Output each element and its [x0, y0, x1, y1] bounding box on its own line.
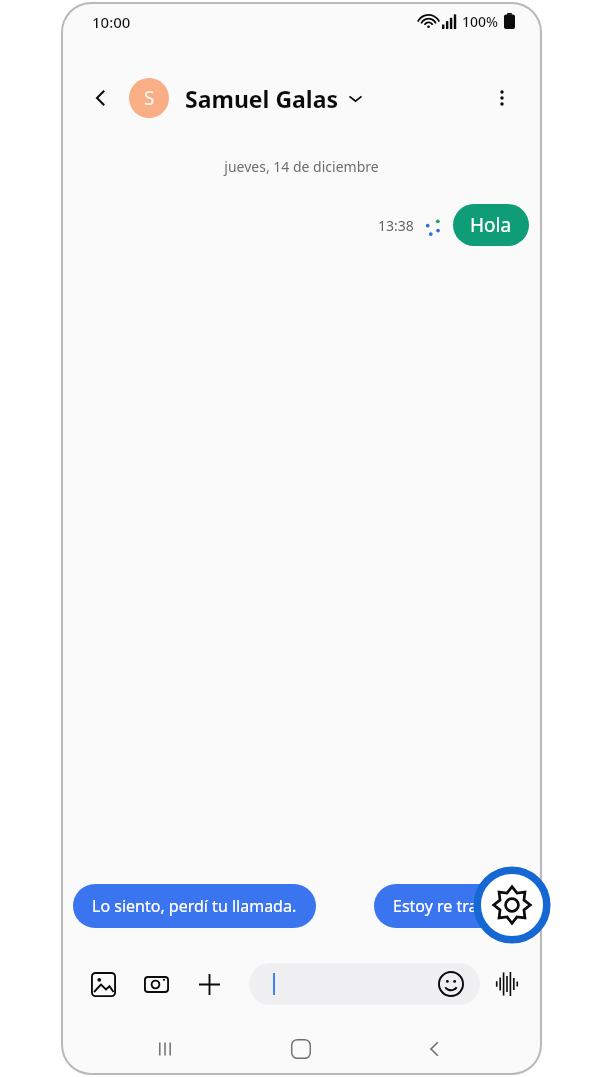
button[interactable]: Add attachment: [191, 966, 227, 1002]
button[interactable]: Contact photo: [129, 78, 169, 118]
button[interactable]: Back: [83, 80, 119, 116]
button[interactable]: Gallery: [85, 966, 121, 1002]
button[interactable]: Home: [279, 1027, 323, 1071]
staticText: Lo siento, perdí tu llamada.: [92, 895, 297, 917]
staticText: 10:00: [92, 12, 131, 32]
button[interactable]: Lo siento, perdí tu llamada.: [73, 884, 316, 928]
staticText: jueves, 14 de diciembre: [224, 157, 379, 176]
button[interactable]: Emoji: [435, 968, 467, 1000]
button[interactable]: Samuel Galas: [185, 78, 363, 118]
staticText: 13:38: [378, 216, 414, 235]
button[interactable]: Recent apps: [143, 1027, 187, 1071]
button[interactable]: Camera: [138, 966, 174, 1002]
button[interactable]: More options: [484, 80, 520, 116]
staticText: S: [144, 85, 155, 111]
button[interactable]: Voice message: [491, 968, 523, 1000]
staticText: 100%: [462, 12, 498, 31]
button[interactable]: [249, 963, 480, 1005]
staticText: Estoy re trabajando: [393, 895, 539, 917]
button[interactable]: Estoy re trabajando: [374, 884, 540, 928]
staticText: Hola: [470, 212, 512, 238]
staticText: Samuel Galas: [185, 83, 338, 114]
button[interactable]: Hola: [453, 204, 529, 246]
button[interactable]: Settings: [473, 866, 551, 944]
button[interactable]: Back: [413, 1027, 457, 1071]
